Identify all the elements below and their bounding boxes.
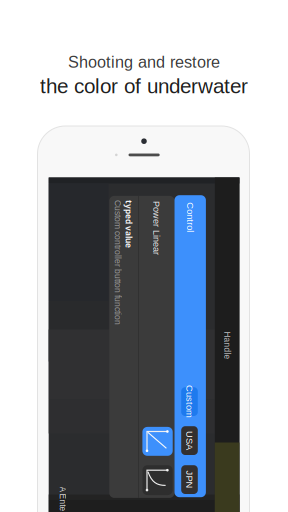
button[interactable]: Ease-out curve	[142, 465, 173, 495]
staticText: Shooting and restore	[68, 53, 220, 71]
staticText: JPN	[180, 474, 198, 485]
staticText: Handle	[213, 341, 241, 350]
staticText: typed value	[35, 278, 83, 290]
button[interactable]: Custom	[181, 387, 198, 416]
staticText: A Enter	[49, 496, 77, 505]
staticText: Control	[175, 212, 205, 222]
button[interactable]: JPN	[181, 465, 198, 494]
button[interactable]: Linear curve	[142, 427, 173, 456]
staticText: Power Linear	[126, 226, 180, 236]
button[interactable]: USA	[181, 426, 198, 455]
staticText: Custom controller button function	[35, 290, 160, 299]
staticText: USA	[180, 435, 199, 446]
staticText: the color of underwater	[40, 74, 248, 98]
staticText: Custom	[173, 396, 206, 407]
